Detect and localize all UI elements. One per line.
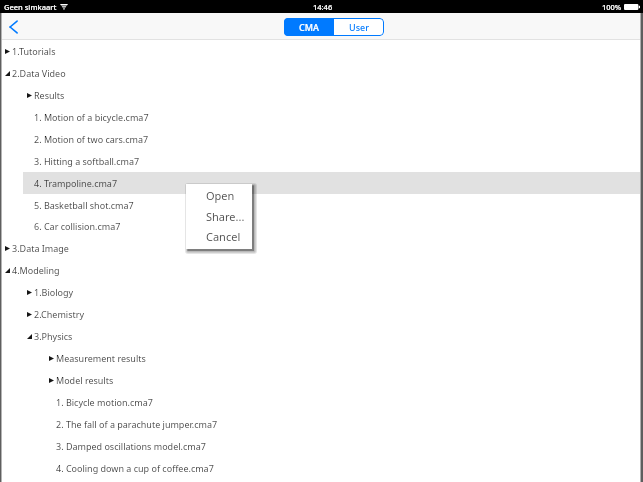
button[interactable]: Model results xyxy=(0,369,643,391)
staticText: 14:46 xyxy=(313,2,333,12)
staticText: 6. Car collision.cma7 xyxy=(34,220,121,232)
staticText: 1.Biology xyxy=(34,286,74,298)
staticText: User xyxy=(349,21,369,33)
staticText: 100% xyxy=(602,2,622,12)
staticText: Open xyxy=(206,188,235,203)
staticText: Geen simkaart xyxy=(4,2,57,12)
button[interactable]: 1. Bicycle motion.cma7 xyxy=(0,391,643,413)
staticText: 2.Chemistry xyxy=(34,308,85,320)
staticText: 4.Modeling xyxy=(12,264,60,276)
staticText: 5. Basketball shot.cma7 xyxy=(34,199,134,211)
button[interactable]: 1.Biology xyxy=(0,281,643,303)
button[interactable]: 2. Motion of two cars.cma7 xyxy=(0,128,643,150)
button[interactable]: 4. Trampoline.cma7 xyxy=(23,172,643,194)
staticText: Results xyxy=(34,89,65,101)
button[interactable]: 1. Motion of a bicycle.cma7 xyxy=(0,106,643,128)
button[interactable]: 3. Hitting a softball.cma7 xyxy=(0,150,643,172)
button[interactable]: 4. Cooling down a cup of coffee.cma7 xyxy=(0,457,643,479)
button[interactable]: Measurement results xyxy=(0,347,643,369)
staticText: Model results xyxy=(56,374,114,386)
staticText: 3.Physics xyxy=(34,330,73,342)
button[interactable]: 2.Data Video xyxy=(0,62,643,84)
staticText: 3.Data Image xyxy=(12,242,69,254)
button[interactable]: 3.Physics xyxy=(0,325,643,347)
staticText: 4. Trampoline.cma7 xyxy=(34,177,118,189)
button[interactable]: 5. Basketball shot.cma7 xyxy=(0,194,643,216)
staticText: 1. Motion of a bicycle.cma7 xyxy=(34,111,149,123)
staticText: Cancel xyxy=(206,229,241,244)
button[interactable]: Share... xyxy=(186,207,252,225)
button[interactable]: 3. Damped oscillations model.cma7 xyxy=(0,435,643,457)
staticText: Share... xyxy=(206,209,245,224)
staticText: 3. Hitting a softball.cma7 xyxy=(34,155,140,167)
button[interactable]: Cancel xyxy=(186,227,252,245)
staticText: 1.Tutorials xyxy=(12,45,56,57)
button[interactable]: Results xyxy=(0,84,643,106)
button[interactable]: 4.Modeling xyxy=(0,259,643,281)
staticText: 2. The fall of a parachute jumper.cma7 xyxy=(56,418,218,430)
staticText: 2. Motion of two cars.cma7 xyxy=(34,133,149,145)
button[interactable]: CMA xyxy=(284,18,334,36)
button[interactable]: 6. Car collision.cma7 xyxy=(0,215,643,237)
staticText: 1. Bicycle motion.cma7 xyxy=(56,396,153,408)
staticText: 2.Data Video xyxy=(12,67,66,79)
button[interactable]: 2.Chemistry xyxy=(0,303,643,325)
button[interactable]: Back xyxy=(0,13,27,40)
staticText: Measurement results xyxy=(56,352,146,364)
button[interactable]: 3.Data Image xyxy=(0,237,643,259)
staticText: CMA xyxy=(299,21,319,33)
button[interactable]: User xyxy=(334,18,384,36)
button[interactable]: 1.Tutorials xyxy=(0,40,643,62)
button[interactable]: Open xyxy=(186,186,252,204)
button[interactable]: 2. The fall of a parachute jumper.cma7 xyxy=(0,413,643,435)
staticText: 3. Damped oscillations model.cma7 xyxy=(56,440,206,452)
staticText: 4. Cooling down a cup of coffee.cma7 xyxy=(56,462,214,474)
